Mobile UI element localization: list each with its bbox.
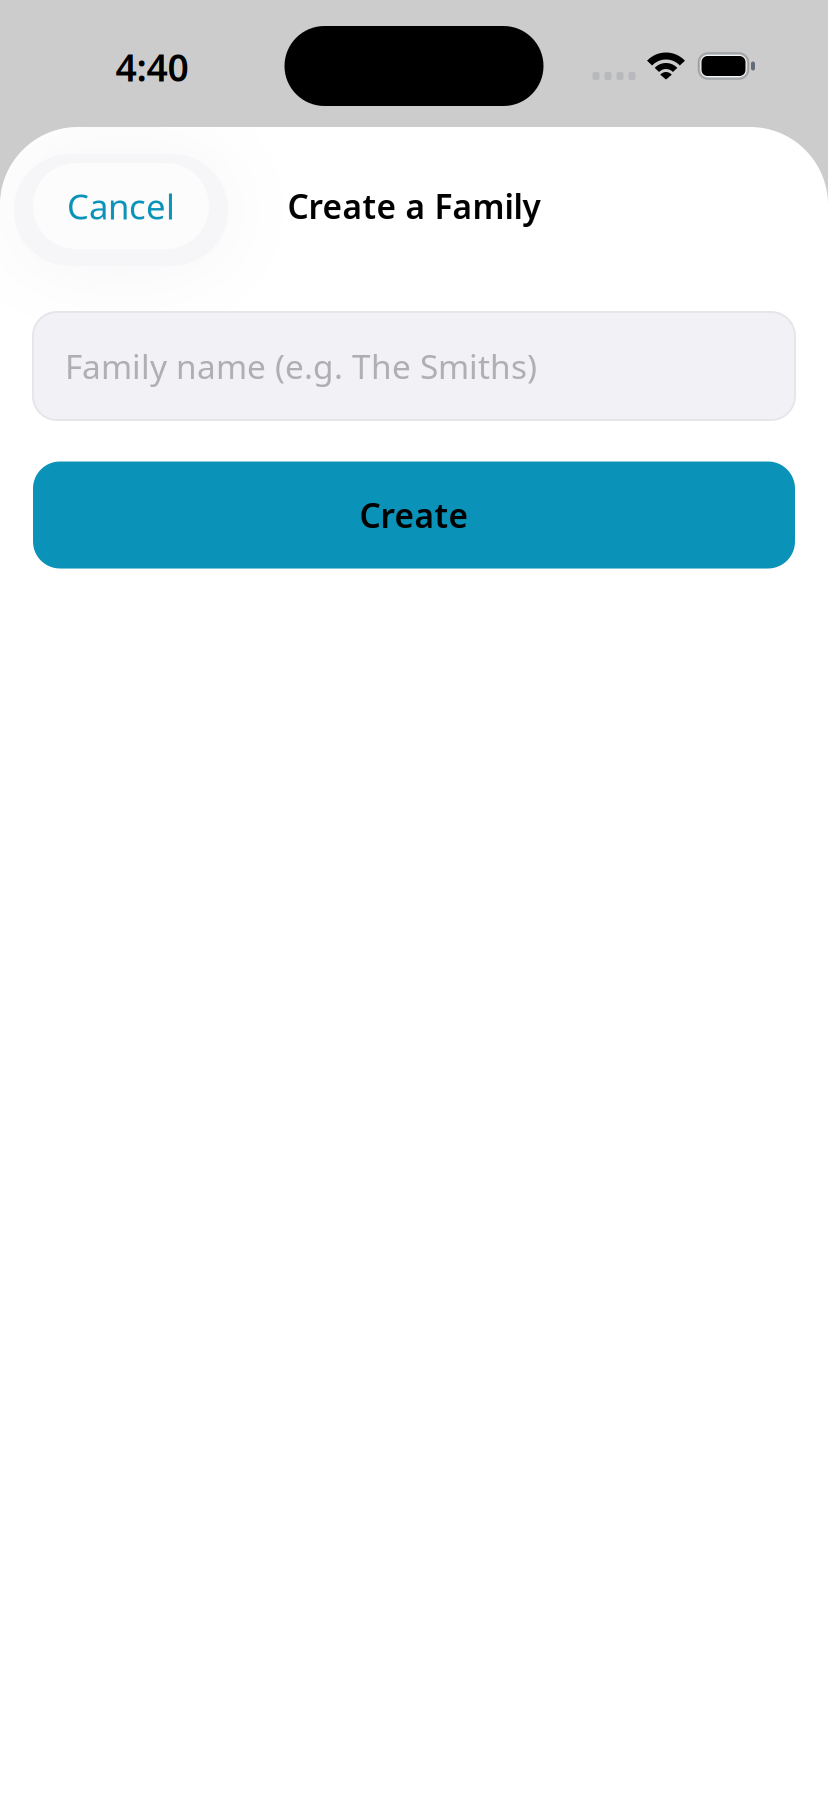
staticText: Create bbox=[359, 493, 468, 537]
button[interactable]: Family name (e.g. The Smiths) bbox=[33, 312, 795, 420]
staticText: Family name (e.g. The Smiths) bbox=[65, 344, 537, 388]
button[interactable]: Create bbox=[33, 461, 795, 568]
staticText: Cancel bbox=[67, 183, 175, 229]
staticText: Create a Family bbox=[287, 184, 540, 228]
button[interactable]: Cancel bbox=[33, 163, 209, 249]
staticText: 4:40 bbox=[115, 42, 188, 92]
